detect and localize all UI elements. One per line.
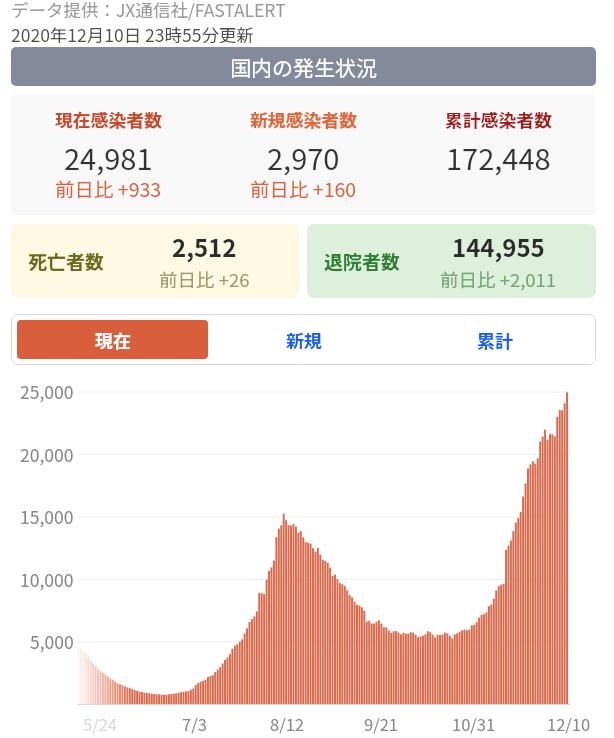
staticText: 10/31 [452,712,496,736]
staticText: 7/3 [182,712,207,736]
staticText: 前日比 +26 [159,266,250,293]
staticText: 144,955 [452,229,545,264]
staticText: 2,512 [172,229,237,264]
staticText: 新規 [286,327,322,353]
staticText: 2,970 [267,136,340,178]
staticText: 2020年12月10日 23時55分更新 [11,22,254,47]
button[interactable]: 累計 [399,320,590,359]
staticText: 5,000 [30,629,74,654]
staticText: 9/21 [364,712,398,736]
staticText: 前日比 +160 [250,174,357,202]
staticText: 退院者数 [324,247,401,275]
staticText: 24,981 [64,136,153,178]
button[interactable]: 現在 [17,320,208,359]
staticText: 172,448 [446,136,551,178]
staticText: 国内の発生状況 [230,52,377,82]
staticText: 前日比 +933 [55,174,162,202]
staticText: データ提供：JX通信社/FASTALERT [11,0,286,22]
staticText: 死亡者数 [28,247,105,275]
staticText: 12/10 [547,712,591,736]
button[interactable]: 新規 [208,320,399,359]
staticText: 15,000 [20,504,74,529]
staticText: 20,000 [20,442,74,467]
staticText: 累計 [477,327,513,353]
staticText: 25,000 [20,379,74,404]
staticText: 前日比 +2,011 [440,266,557,293]
staticText: 現在感染者数 [55,106,162,132]
staticText: 8/12 [270,712,304,736]
staticText: 10,000 [20,567,74,592]
staticText: 現在 [95,327,131,353]
staticText: 累計感染者数 [445,106,552,132]
staticText: 新規感染者数 [250,106,357,132]
staticText: 5/24 [83,712,117,736]
